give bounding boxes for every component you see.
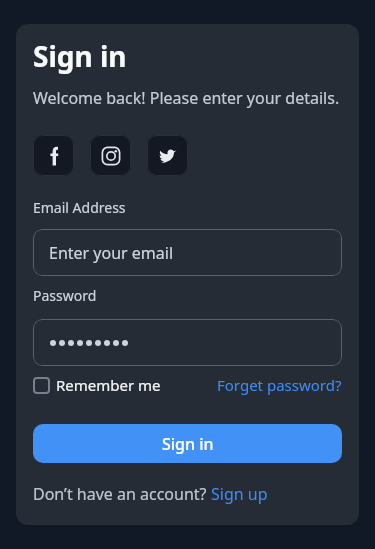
button[interactable]: Forget password? [217,375,342,395]
staticText: Don’t have an account? [33,483,211,505]
button[interactable]: Remember me [33,375,161,395]
staticText: Welcome back! Please enter your details. [33,87,340,109]
staticText: Remember me [56,375,161,395]
staticText: Sign in [33,37,127,75]
staticText: Sign in [162,433,214,455]
button[interactable] [90,135,131,176]
button[interactable]: Sign up [211,483,268,505]
button[interactable]: Enter your email [33,229,342,276]
staticText: Email Address [33,198,126,217]
button[interactable] [33,319,342,366]
staticText: Password [33,286,97,305]
button[interactable] [33,135,74,176]
staticText: Enter your email [49,242,174,264]
button[interactable]: Sign in [33,424,342,463]
button[interactable] [147,135,188,176]
